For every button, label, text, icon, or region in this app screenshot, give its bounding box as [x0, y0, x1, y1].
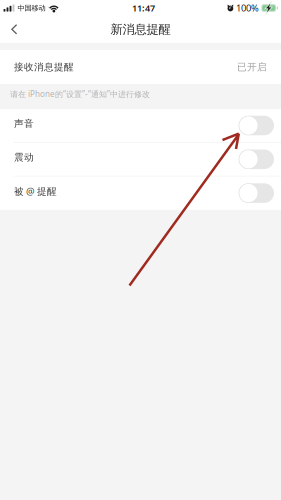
staticText: 请在 iPhone的“设置”-“通知”中进行修改 [10, 89, 150, 99]
button[interactable]: 震动 [0, 143, 281, 176]
staticText: 接收消息提醒 [14, 61, 74, 73]
button[interactable]: 接收消息提醒 [0, 50, 281, 84]
staticText: 11:47 [132, 2, 155, 14]
staticText: 震动 [14, 151, 34, 163]
staticText: 声音 [14, 117, 34, 130]
button[interactable]: Back [0, 16, 30, 43]
staticText: 中国移动 [17, 3, 45, 13]
button[interactable]: 声音 [0, 109, 281, 142]
staticText: 已开启 [237, 61, 267, 73]
staticText: 新消息提醒 [110, 22, 170, 37]
staticText: 被 @ 提醒 [14, 185, 57, 198]
button[interactable]: 被 @ 提醒 [0, 177, 281, 210]
staticText: 100% [236, 2, 259, 14]
